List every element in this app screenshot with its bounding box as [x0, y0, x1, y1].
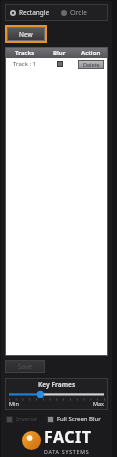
button[interactable]: Key frames slider	[9, 391, 104, 400]
staticText: Min	[9, 400, 19, 407]
staticText: Blur	[53, 49, 66, 57]
staticText: Tracks	[15, 49, 35, 57]
button[interactable]: Circle	[61, 8, 87, 17]
button[interactable]: Track : 1	[5, 58, 108, 70]
staticText: Max	[93, 400, 104, 407]
staticText: Action	[81, 49, 101, 57]
staticText: Circle	[70, 8, 87, 17]
button[interactable]	[57, 61, 63, 67]
button[interactable]: New	[7, 27, 45, 41]
staticText: FACIT	[44, 426, 92, 448]
button[interactable]: Save	[5, 360, 45, 373]
staticText: New	[19, 30, 33, 39]
button[interactable]: Inverse	[6, 415, 37, 423]
staticText: Inverse	[16, 415, 37, 423]
button[interactable]: Rectangle	[10, 8, 50, 17]
button[interactable]: Full Screen Blur	[47, 415, 101, 423]
staticText: Rectangle	[19, 8, 50, 17]
staticText: Key Frames	[38, 380, 76, 389]
staticText: Track : 1	[13, 60, 37, 68]
button[interactable]: Delete	[78, 60, 104, 69]
staticText: DATA SYSTEMS	[44, 448, 90, 455]
staticText: Delete	[83, 61, 100, 68]
staticText: Save	[18, 362, 33, 371]
staticText: Full Screen Blur	[57, 415, 101, 423]
